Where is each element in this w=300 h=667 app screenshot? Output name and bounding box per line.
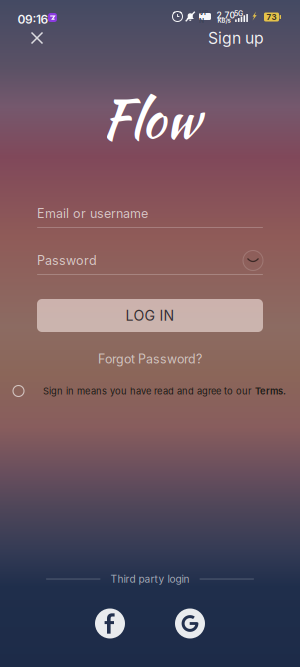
- button[interactable]: Sign in with Google: [175, 608, 205, 638]
- staticText: LOG IN: [125, 307, 174, 324]
- button[interactable]: LOG IN: [37, 299, 263, 332]
- staticText: Email or username: [37, 206, 148, 221]
- staticText: Forgot Password?: [98, 351, 202, 366]
- staticText: 09:16: [17, 12, 48, 27]
- button[interactable]: Forgot Password?: [37, 352, 263, 366]
- staticText: KB/s: [217, 17, 230, 24]
- staticText: Sign up: [208, 28, 264, 47]
- staticText: Third party login: [110, 573, 189, 585]
- button[interactable]: Agree to terms: [11, 383, 26, 398]
- staticText: Password: [37, 253, 97, 268]
- button[interactable]: Close: [21, 22, 53, 54]
- staticText: Flow: [100, 80, 199, 157]
- button[interactable]: Sign in with Facebook: [95, 608, 125, 638]
- staticText: 73: [266, 12, 276, 22]
- staticText: Sign in means you have read and agree to…: [43, 385, 286, 396]
- button[interactable]: Sign up: [208, 22, 264, 54]
- button[interactable]: Show password: [243, 250, 263, 270]
- staticText: 2.70: [216, 10, 235, 20]
- staticText: VPN: [199, 8, 211, 24]
- staticText: 5G: [234, 10, 243, 18]
